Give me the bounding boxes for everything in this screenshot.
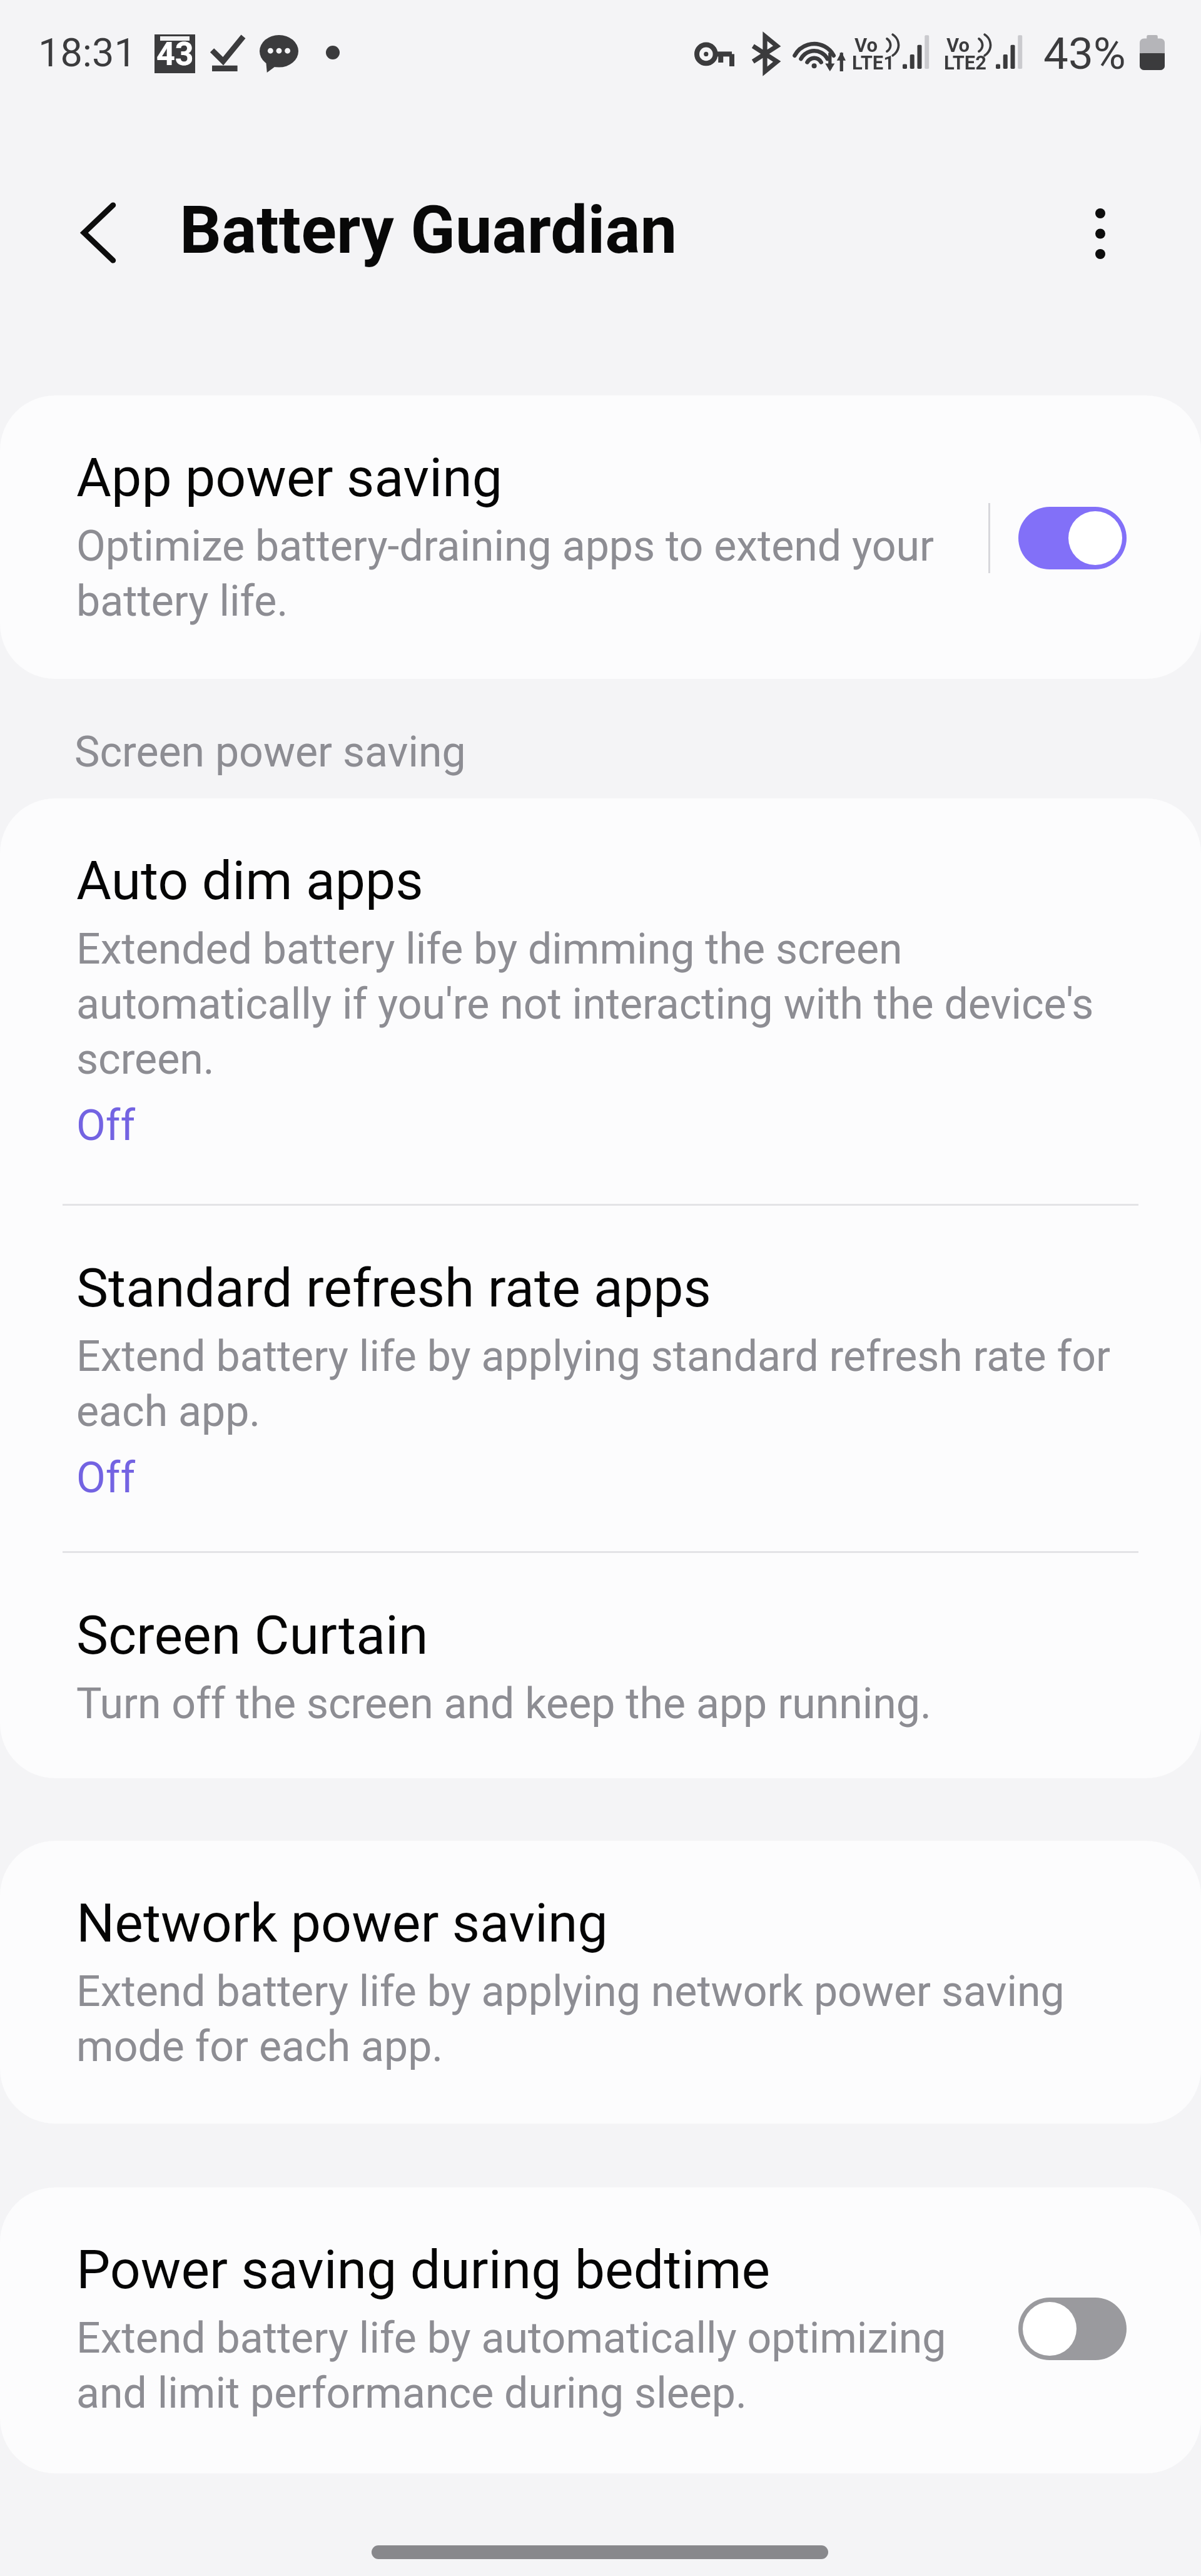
staticText: Extend battery life by applying network … [76, 1967, 1065, 2017]
staticText: Vo [854, 34, 878, 56]
button[interactable]: Standard refresh rate apps [0, 1206, 1201, 1551]
staticText: automatically if you're not interacting … [76, 979, 1094, 1029]
staticText: App power saving [76, 446, 502, 509]
staticText: Off [76, 1101, 136, 1151]
staticText: Screen Curtain [76, 1604, 428, 1667]
button[interactable]: Navigate up [61, 195, 136, 270]
staticText: Screen power saving [74, 727, 466, 777]
staticText: Extend battery life by automatically opt… [76, 2313, 946, 2363]
staticText: Extend battery life by applying standard… [76, 1331, 1110, 1382]
staticText: 18:31 [38, 30, 136, 76]
button[interactable]: Auto dim apps [0, 798, 1201, 1204]
staticText: Turn off the screen and keep the app run… [76, 1679, 931, 1729]
staticText: Optimize battery-draining apps to extend… [76, 521, 935, 571]
staticText: Extended battery life by dimming the scr… [76, 924, 903, 974]
button[interactable]: Network power saving [0, 1841, 1201, 2124]
staticText: 43% [1043, 28, 1126, 79]
button[interactable]: Switch off [1018, 2298, 1127, 2360]
button[interactable]: Switch on [1018, 507, 1127, 569]
button[interactable]: App power saving [0, 395, 1201, 679]
staticText: Power saving during bedtime [76, 2238, 771, 2301]
button[interactable]: Screen Curtain [0, 1553, 1201, 1778]
staticText: Network power saving [76, 1891, 608, 1955]
staticText: 43 [156, 35, 194, 73]
staticText: Standard refresh rate apps [76, 1256, 711, 1320]
staticText: each app. [76, 1387, 261, 1437]
staticText: and limit performance during sleep. [76, 2368, 747, 2418]
staticText: screen. [76, 1034, 215, 1084]
staticText: Auto dim apps [76, 849, 423, 912]
staticText: mode for each app. [76, 2022, 443, 2072]
staticText: Battery Guardian [180, 192, 677, 269]
staticText: LTE2 [944, 51, 987, 74]
staticText: Vo [946, 34, 970, 56]
staticText: LTE1 [852, 51, 895, 74]
button[interactable]: More options [1063, 196, 1138, 271]
staticText: battery life. [76, 576, 288, 626]
button[interactable]: Power saving during bedtime [0, 2187, 1201, 2473]
staticText: Off [76, 1453, 136, 1503]
